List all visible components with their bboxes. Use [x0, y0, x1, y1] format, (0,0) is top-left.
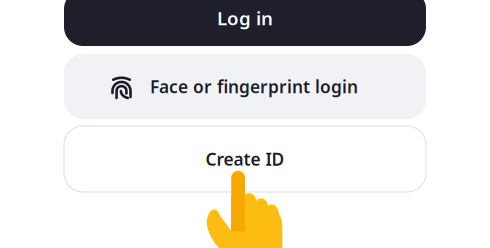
button[interactable]: Log in: [64, 0, 426, 46]
staticText: Create ID: [205, 147, 284, 170]
button[interactable]: Face or fingerprint login: [64, 54, 426, 119]
staticText: Log in: [217, 6, 273, 30]
staticText: Face or fingerprint login: [150, 75, 358, 98]
button[interactable]: Create ID: [64, 126, 426, 192]
